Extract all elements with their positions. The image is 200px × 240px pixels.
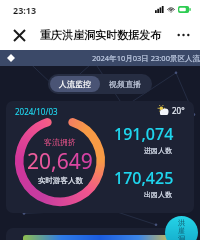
staticText: 23:13 (13, 4, 37, 16)
button[interactable]: 更多 (171, 23, 195, 47)
button[interactable]: 视频直播 (100, 76, 150, 92)
button[interactable]: 人流监控 (50, 76, 100, 92)
staticText: 客流拥挤 (44, 137, 76, 147)
staticText: 视频直播 (109, 79, 141, 89)
staticText: 2024/10/03 (15, 106, 58, 117)
staticText: 洪 崖 洞 (178, 218, 185, 240)
staticText: 实时游客人数 (38, 176, 83, 185)
button[interactable] (6, 228, 194, 240)
staticText: 191,074 (114, 123, 174, 145)
button[interactable]: 洪崖洞 (165, 216, 198, 240)
staticText: 2024年10月03日 23:00景区人流 (92, 53, 200, 63)
staticText: 170,425 (114, 167, 174, 189)
staticText: 出园人数 (144, 190, 172, 199)
staticText: 人流监控 (59, 79, 91, 89)
staticText: 进园人数 (144, 146, 172, 155)
staticText: 20,649 (27, 147, 93, 176)
button[interactable]: 2024年10月03日 23:00景区人流 (0, 50, 200, 66)
button[interactable]: 2024/10/03 (6, 101, 194, 213)
button[interactable]: 关闭 (6, 22, 32, 48)
staticText: 20° (172, 105, 185, 116)
staticText: 重庆洪崖洞实时数据发布 (40, 28, 161, 42)
